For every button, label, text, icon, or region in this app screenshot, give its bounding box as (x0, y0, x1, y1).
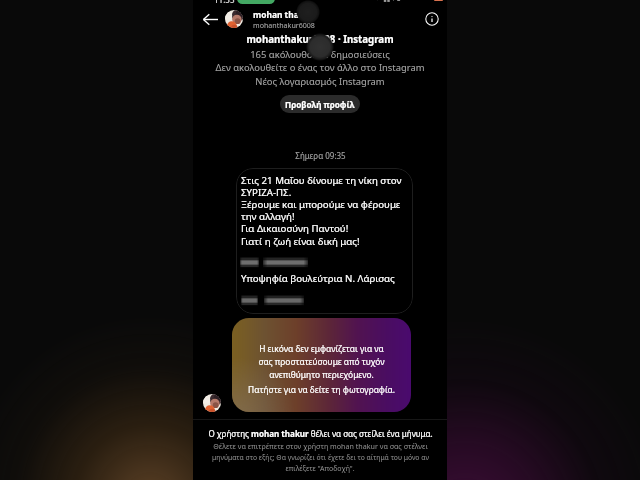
staticText: Σήμερα 09:35 (295, 150, 346, 161)
button[interactable]: Back (198, 7, 222, 31)
staticText: mohanthakur6008 (253, 20, 315, 30)
staticText: mohanthakur6008 · Instagram (246, 33, 394, 46)
staticText: 165 ακόλουθοι · 2 δημοσιεύσεις (250, 48, 390, 61)
staticText: Πατήστε για να δείτε τη φωτογραφία. (248, 384, 395, 395)
staticText: mohan thakur (253, 9, 314, 20)
staticText: Γιατί η ζωή είναι δική μας! (241, 235, 360, 248)
button[interactable]: Προβολή προφίλ (280, 95, 360, 113)
staticText: Υποψηφία βουλεύτρια Ν. Λάρισας (241, 272, 395, 285)
staticText: Δεν ακολουθείτε ο ένας τον άλλο στο Inst… (215, 61, 425, 74)
staticText: Στις 21 Μαΐου δίνουμε τη νίκη στον (241, 174, 402, 187)
staticText: την αλλαγή! (241, 210, 295, 223)
staticText: Η εικόνα δεν εμφανίζεται για να (259, 343, 384, 354)
staticText: Για Δικαιοσύνη Παντού! (241, 222, 349, 235)
staticText: μηνύματα στο εξής; Θα γνωρίζει ότι έχετε… (212, 453, 429, 462)
staticText: ✓ ▮▮ ▾ ▴ (376, 0, 401, 3)
staticText: ανεπιθύμητο περιεχόμενο. (269, 369, 374, 380)
staticText: 11:55 (214, 0, 235, 5)
staticText: Νέος λογαριασμός Instagram (255, 75, 385, 88)
button[interactable]: Info (421, 8, 443, 30)
staticText: επιλέξετε "Αποδοχή". (285, 464, 355, 474)
staticText: σας προστατεύσουμε από τυχόν (258, 356, 385, 367)
staticText: Ο χρήστης mohan thakur θέλει να σας στεί… (208, 428, 433, 439)
staticText: Ξέρουμε και μπορούμε να φέρουμε (241, 198, 401, 211)
staticText: ΣΥΡΙΖΑ-ΠΣ. (241, 186, 292, 199)
staticText: Θέλετε να επιτρέπετε στον χρήστη mohan t… (213, 441, 428, 451)
staticText: Προβολή προφίλ (285, 99, 355, 110)
button[interactable]: Η εικόνα δεν εμφανίζεται για να (232, 318, 411, 412)
button[interactable]: Στις 21 Μαΐου δίνουμε τη νίκη στον (236, 168, 413, 314)
